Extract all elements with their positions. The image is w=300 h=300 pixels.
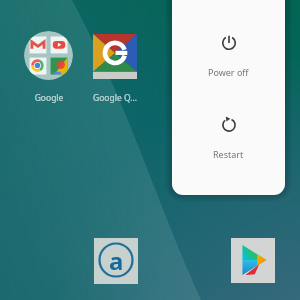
- button[interactable]: Google folder: [24, 31, 73, 80]
- button[interactable]: Play Store: [231, 238, 275, 283]
- staticText: Google Q...: [84, 92, 146, 104]
- button[interactable]: Amazon: [94, 238, 138, 284]
- button[interactable]: Power off: [172, 9, 285, 91]
- staticText: a: [109, 244, 124, 277]
- staticText: Restart: [213, 148, 244, 160]
- staticText: Power off: [208, 66, 249, 78]
- button[interactable]: Restart: [172, 91, 285, 173]
- button[interactable]: Google Quick Search: [93, 34, 137, 79]
- staticText: Google: [18, 92, 80, 104]
